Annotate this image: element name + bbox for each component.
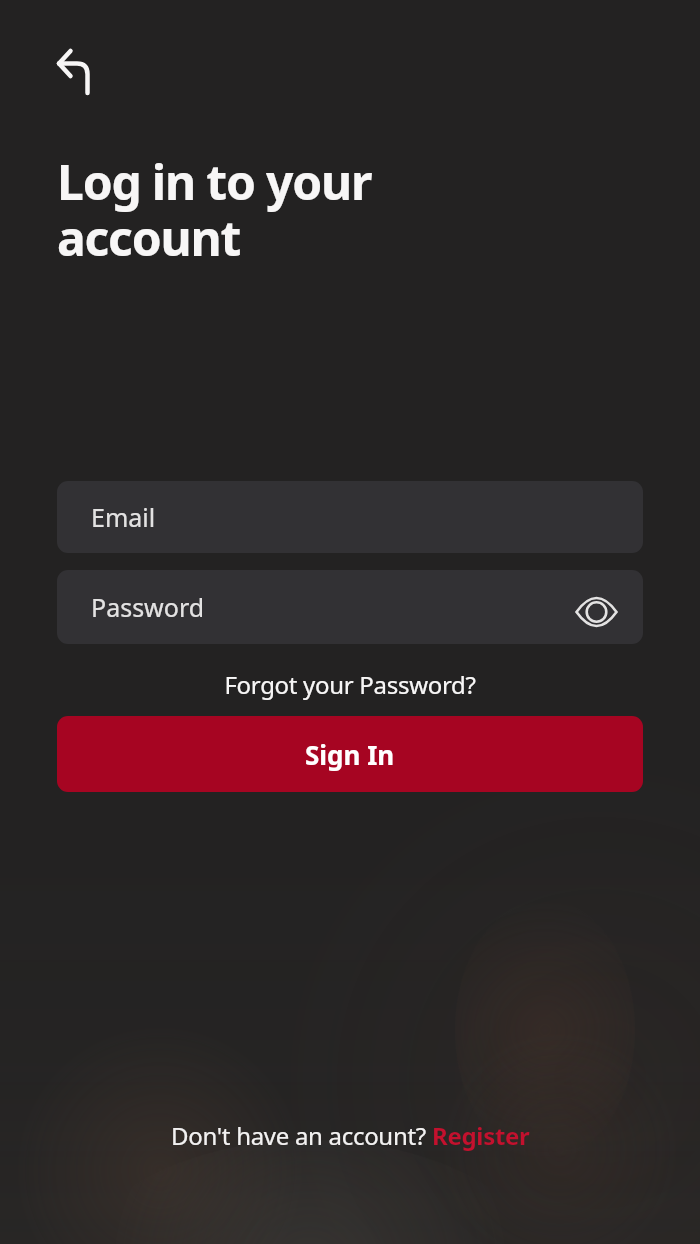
button[interactable]: Password [57, 570, 643, 644]
button[interactable]: Email [57, 481, 643, 553]
button[interactable]: Don't have an account? [171, 1119, 530, 1152]
button[interactable] [57, 48, 101, 92]
staticText: Password [91, 590, 205, 624]
staticText: Log in to your account [57, 149, 372, 270]
staticText: Email [91, 500, 156, 534]
staticText: Register [432, 1119, 530, 1152]
button[interactable] [574, 590, 618, 634]
button[interactable]: Sign In [57, 716, 643, 792]
button[interactable]: Forgot your Password? [57, 668, 643, 701]
staticText: Sign In [305, 737, 395, 772]
staticText: Don't have an account? [171, 1119, 432, 1152]
